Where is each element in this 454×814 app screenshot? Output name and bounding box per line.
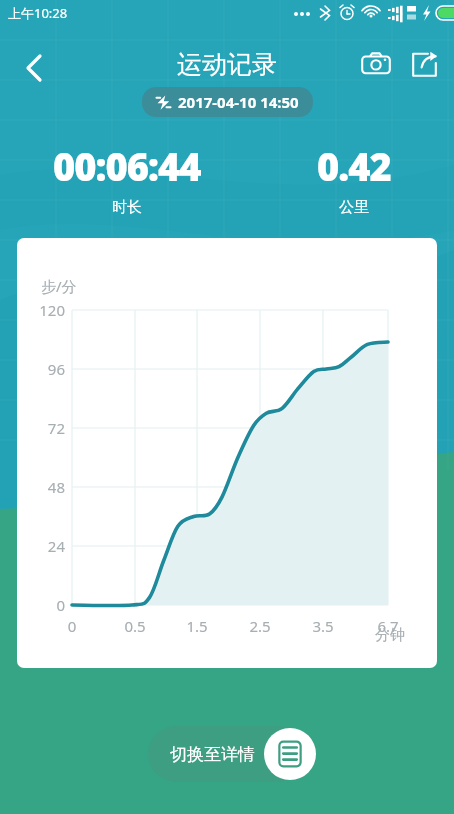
staticText: 48: [25, 477, 65, 497]
staticText: 0: [52, 616, 92, 636]
staticText: 切换至详情: [170, 744, 255, 765]
staticText: 时长: [112, 198, 142, 217]
staticText: 分钟: [375, 626, 405, 645]
staticText: 2017-04-10 14:50: [178, 92, 299, 112]
button[interactable]: Share: [400, 40, 448, 88]
button[interactable]: 步/分: [17, 238, 437, 668]
staticText: 00:06:44: [53, 140, 201, 192]
button[interactable]: Switch to details: [264, 728, 316, 780]
staticText: 0: [25, 595, 65, 615]
button[interactable]: Back: [6, 40, 62, 96]
button[interactable]: 2017-04-10 14:50: [142, 87, 313, 117]
staticText: 120: [25, 300, 65, 320]
staticText: 0.42: [317, 140, 391, 192]
button[interactable]: 切换至详情: [148, 726, 306, 782]
button[interactable]: Camera: [352, 40, 400, 88]
staticText: 6.7: [368, 616, 408, 636]
staticText: 72: [25, 418, 65, 438]
staticText: 24: [25, 536, 65, 556]
staticText: 96: [25, 359, 65, 379]
staticText: 上午10:28: [8, 4, 68, 22]
staticText: 运动记录: [177, 49, 277, 80]
staticText: 0.5: [115, 616, 155, 636]
staticText: 公里: [339, 198, 369, 217]
staticText: 步/分: [41, 276, 77, 296]
staticText: 3.5: [303, 616, 343, 636]
staticText: 2.5: [240, 616, 280, 636]
staticText: 1.5: [177, 616, 217, 636]
